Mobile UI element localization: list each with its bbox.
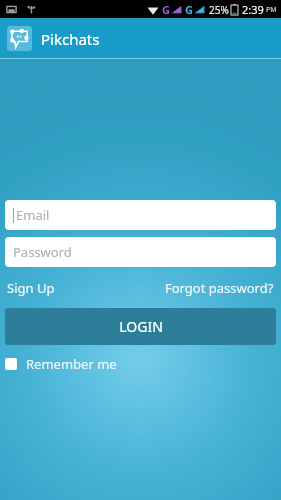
staticText: 2:39 xyxy=(242,2,264,17)
staticText: PM xyxy=(266,5,277,15)
button[interactable]: Sign Up xyxy=(5,277,57,299)
staticText: Email xyxy=(16,206,50,224)
staticText: G xyxy=(185,2,193,17)
button[interactable]: Email xyxy=(5,200,276,230)
button[interactable]: Forgot password? xyxy=(163,277,276,299)
staticText: Sign Up xyxy=(7,279,55,297)
button[interactable]: Password xyxy=(5,237,276,267)
button[interactable]: Remember me xyxy=(5,353,117,375)
staticText: Pikchats xyxy=(41,29,100,49)
staticText: 25% xyxy=(209,3,229,17)
button[interactable]: Pikchats logo xyxy=(7,26,32,51)
staticText: Remember me xyxy=(26,355,117,373)
staticText: G xyxy=(162,2,170,17)
staticText: LOGIN xyxy=(119,317,163,336)
button[interactable]: LOGIN xyxy=(5,308,276,345)
staticText: Password xyxy=(13,243,72,261)
staticText: Forgot password? xyxy=(165,279,274,297)
